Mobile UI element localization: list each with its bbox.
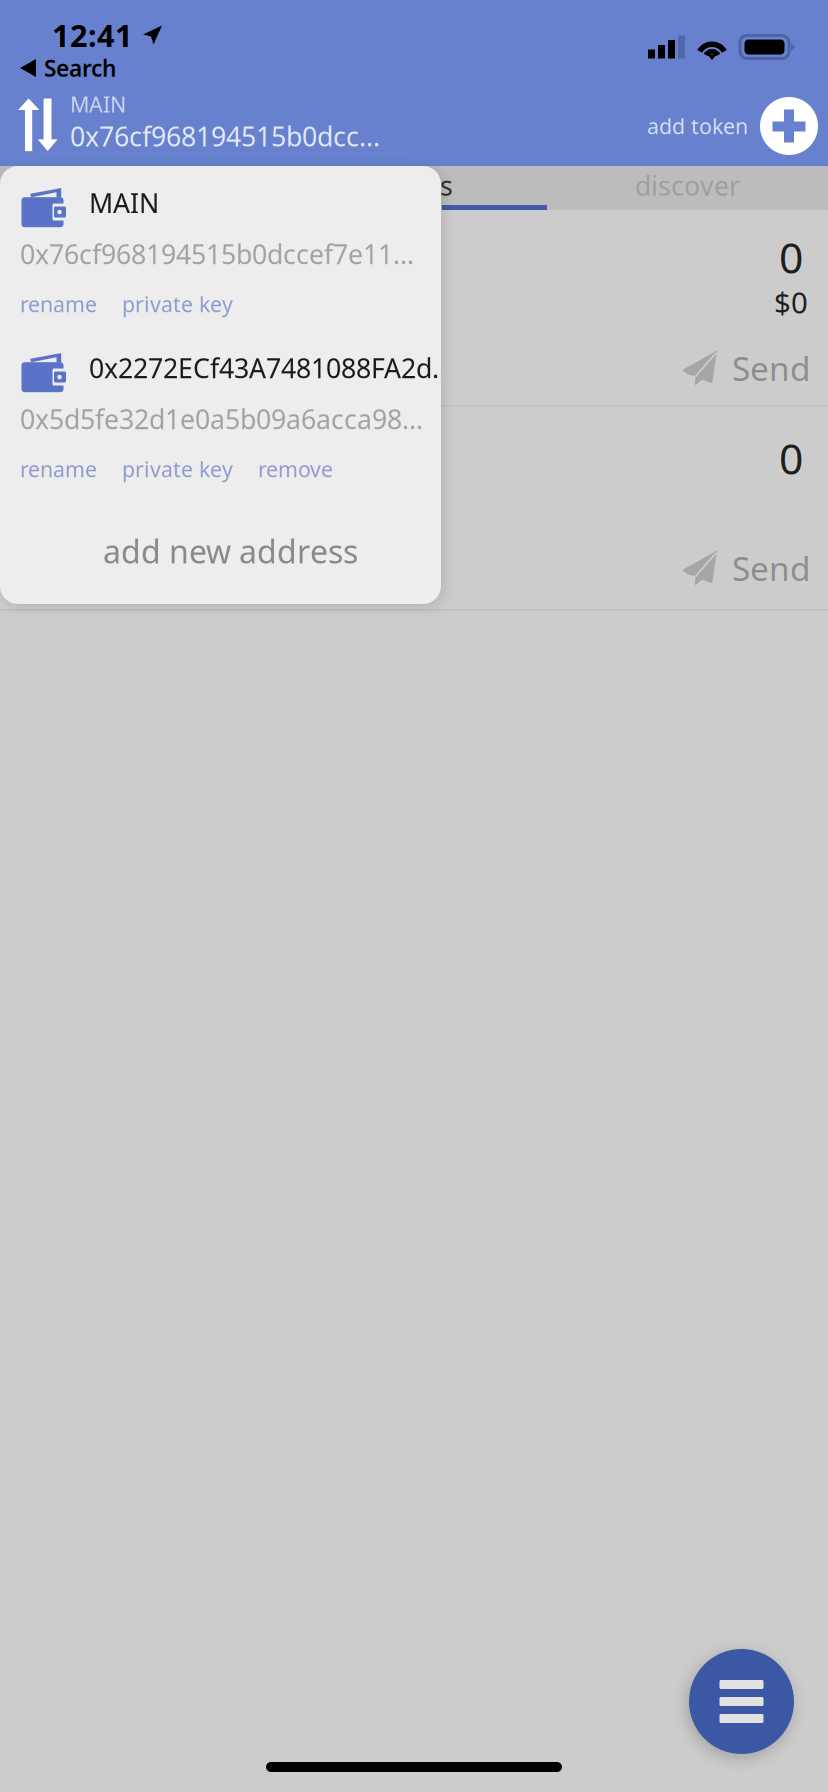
button[interactable]: assets: [343, 166, 453, 205]
button[interactable]: remove: [258, 452, 333, 486]
staticText: 0: [779, 229, 803, 285]
button[interactable]: MAIN: [18, 94, 380, 150]
staticText: add token: [647, 112, 748, 140]
button[interactable]: add new address: [20, 529, 441, 573]
button[interactable]: MAIN: [20, 183, 159, 223]
button[interactable]: Send: [0, 348, 811, 388]
staticText: 0x76cf968194515b0dcc…: [70, 118, 380, 154]
staticText: remove: [258, 455, 333, 483]
staticText: 0: [779, 430, 803, 486]
button[interactable]: private key: [122, 287, 233, 321]
staticText: Send: [732, 546, 811, 590]
staticText: 12:41: [52, 15, 133, 55]
button[interactable]: 0x2272ECf43A7481088FA2d..: [20, 348, 446, 388]
button[interactable]: Send: [0, 548, 811, 588]
staticText: Send: [732, 346, 811, 390]
staticText: MAIN: [89, 185, 159, 221]
staticText: 0x2272ECf43A7481088FA2d..: [89, 350, 446, 386]
button[interactable]: Search: [20, 57, 116, 79]
button[interactable]: rename: [20, 452, 97, 486]
button[interactable]: Menu: [689, 1649, 794, 1754]
staticText: 0x76cf968194515b0dccef7e11…: [20, 236, 414, 272]
staticText: Search: [44, 53, 116, 83]
staticText: assets: [374, 168, 453, 203]
button[interactable]: add token: [647, 95, 818, 157]
button[interactable]: private key: [122, 452, 233, 486]
staticText: private key: [122, 455, 233, 483]
staticText: private key: [122, 290, 233, 318]
staticText: MAIN: [70, 90, 126, 118]
staticText: 0x5d5fe32d1e0a5b09a6acca98…: [20, 401, 423, 437]
button[interactable]: rename: [20, 287, 97, 321]
staticText: discover: [635, 168, 740, 203]
button[interactable]: discover: [547, 166, 828, 205]
staticText: rename: [20, 455, 97, 483]
staticText: $0: [774, 282, 808, 321]
staticText: add new address: [103, 530, 358, 572]
staticText: rename: [20, 290, 97, 318]
